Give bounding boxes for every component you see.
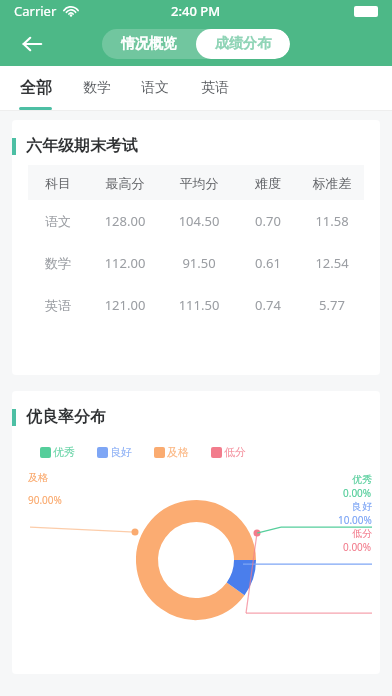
staticText: 128.00 bbox=[88, 212, 162, 230]
staticText: 112.00 bbox=[88, 254, 162, 272]
button[interactable]: 良好 bbox=[97, 445, 132, 459]
staticText: 优秀 bbox=[352, 473, 372, 486]
button[interactable]: 情况概览 bbox=[102, 29, 196, 59]
button[interactable]: 低分 bbox=[211, 445, 246, 459]
staticText: 数学 bbox=[28, 255, 88, 271]
staticText: 优秀 bbox=[53, 445, 75, 459]
button[interactable]: 优秀 bbox=[40, 445, 75, 459]
button[interactable]: 成绩分布 bbox=[196, 29, 290, 59]
staticText: Carrier bbox=[14, 2, 57, 20]
staticText: 5.77 bbox=[300, 296, 364, 314]
staticText: 最高分 bbox=[88, 175, 162, 191]
staticText: 11.58 bbox=[300, 212, 364, 230]
staticText: 0.61 bbox=[236, 254, 300, 272]
staticText: 良好 bbox=[352, 500, 372, 513]
staticText: 2:40 PM bbox=[171, 2, 221, 20]
staticText: 及格 bbox=[167, 445, 189, 459]
staticText: 0.00% bbox=[343, 486, 372, 500]
staticText: 0.00% bbox=[343, 540, 372, 554]
staticText: 英语 bbox=[28, 297, 88, 313]
staticText: 低分 bbox=[224, 445, 246, 459]
staticText: 良好 bbox=[110, 445, 132, 459]
staticText: 低分 bbox=[352, 527, 372, 540]
button[interactable]: 全部 bbox=[20, 66, 52, 110]
staticText: 六年级期末考试 bbox=[26, 136, 138, 156]
staticText: 121.00 bbox=[88, 296, 162, 314]
staticText: 标准差 bbox=[300, 175, 364, 191]
button[interactable]: 英语 bbox=[201, 66, 229, 110]
staticText: 104.50 bbox=[162, 212, 236, 230]
staticText: 语文 bbox=[28, 213, 88, 229]
staticText: 91.50 bbox=[162, 254, 236, 272]
staticText: 语文 bbox=[141, 79, 169, 97]
staticText: 数学 bbox=[83, 79, 111, 97]
button[interactable]: 数学 bbox=[83, 66, 111, 110]
staticText: 及格 bbox=[28, 471, 48, 484]
staticText: 0.74 bbox=[236, 296, 300, 314]
staticText: 难度 bbox=[236, 175, 300, 191]
staticText: 平均分 bbox=[162, 175, 236, 191]
staticText: 90.00% bbox=[28, 493, 62, 507]
button[interactable]: 及格 bbox=[154, 445, 189, 459]
staticText: 111.50 bbox=[162, 296, 236, 314]
staticText: 优良率分布 bbox=[26, 407, 106, 427]
staticText: 科目 bbox=[28, 175, 88, 191]
staticText: 成绩分布 bbox=[215, 35, 271, 53]
staticText: 12.54 bbox=[300, 254, 364, 272]
staticText: 10.00% bbox=[338, 513, 372, 527]
staticText: 0.70 bbox=[236, 212, 300, 230]
button[interactable]: 语文 bbox=[141, 66, 169, 110]
staticText: 情况概览 bbox=[121, 35, 177, 53]
staticText: 英语 bbox=[201, 79, 229, 97]
button[interactable]: Back bbox=[10, 22, 54, 66]
staticText: 全部 bbox=[20, 78, 52, 98]
